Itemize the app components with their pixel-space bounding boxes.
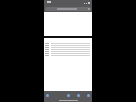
button[interactable]: Tabs — [77, 94, 80, 97]
button[interactable]: Share — [67, 94, 70, 97]
button[interactable]: Home — [46, 94, 49, 97]
button[interactable]: Menu — [87, 94, 90, 97]
button[interactable] — [45, 7, 91, 11]
